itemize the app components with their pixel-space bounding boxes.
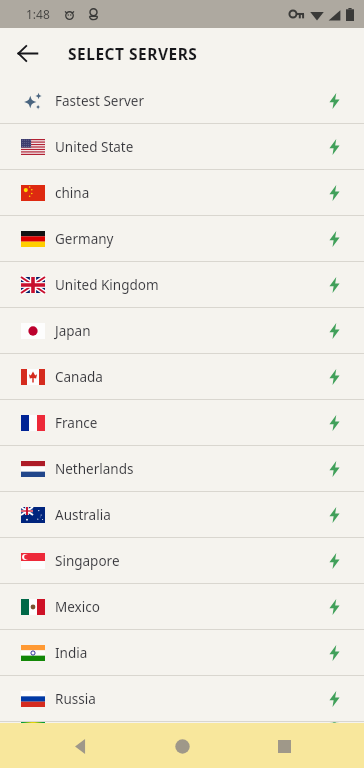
staticText: Germany bbox=[55, 230, 114, 248]
button[interactable]: china bbox=[0, 170, 364, 215]
button[interactable]: Russia bbox=[0, 676, 364, 721]
button[interactable]: India bbox=[0, 630, 364, 675]
staticText: 1:48 bbox=[26, 6, 50, 22]
staticText: Russia bbox=[55, 690, 96, 708]
button[interactable]: Back bbox=[10, 36, 44, 70]
staticText: Australia bbox=[55, 506, 111, 524]
button[interactable]: France bbox=[0, 400, 364, 445]
button[interactable]: United Kingdom bbox=[0, 262, 364, 307]
staticText: Canada bbox=[55, 368, 103, 386]
button[interactable]: Home bbox=[160, 724, 204, 768]
button[interactable]: Fastest Server bbox=[0, 78, 364, 123]
staticText: SELECT SERVERS bbox=[68, 43, 198, 64]
button[interactable]: Brazil bbox=[0, 722, 364, 723]
staticText: Fastest Server bbox=[55, 92, 145, 110]
button[interactable]: Germany bbox=[0, 216, 364, 261]
button[interactable]: Canada bbox=[0, 354, 364, 399]
button[interactable]: United State bbox=[0, 124, 364, 169]
staticText: china bbox=[55, 184, 90, 202]
button[interactable]: Singapore bbox=[0, 538, 364, 583]
staticText: Netherlands bbox=[55, 460, 134, 478]
button[interactable]: Mexico bbox=[0, 584, 364, 629]
button[interactable]: Netherlands bbox=[0, 446, 364, 491]
staticText: Singapore bbox=[55, 552, 120, 570]
button[interactable]: Japan bbox=[0, 308, 364, 353]
staticText: United State bbox=[55, 138, 134, 156]
staticText: France bbox=[55, 414, 98, 432]
button[interactable]: Back bbox=[58, 724, 102, 768]
staticText: India bbox=[55, 644, 88, 662]
staticText: Mexico bbox=[55, 598, 100, 616]
button[interactable]: Recent apps bbox=[262, 724, 306, 768]
button[interactable]: Australia bbox=[0, 492, 364, 537]
staticText: Japan bbox=[55, 322, 91, 340]
staticText: United Kingdom bbox=[55, 276, 159, 294]
